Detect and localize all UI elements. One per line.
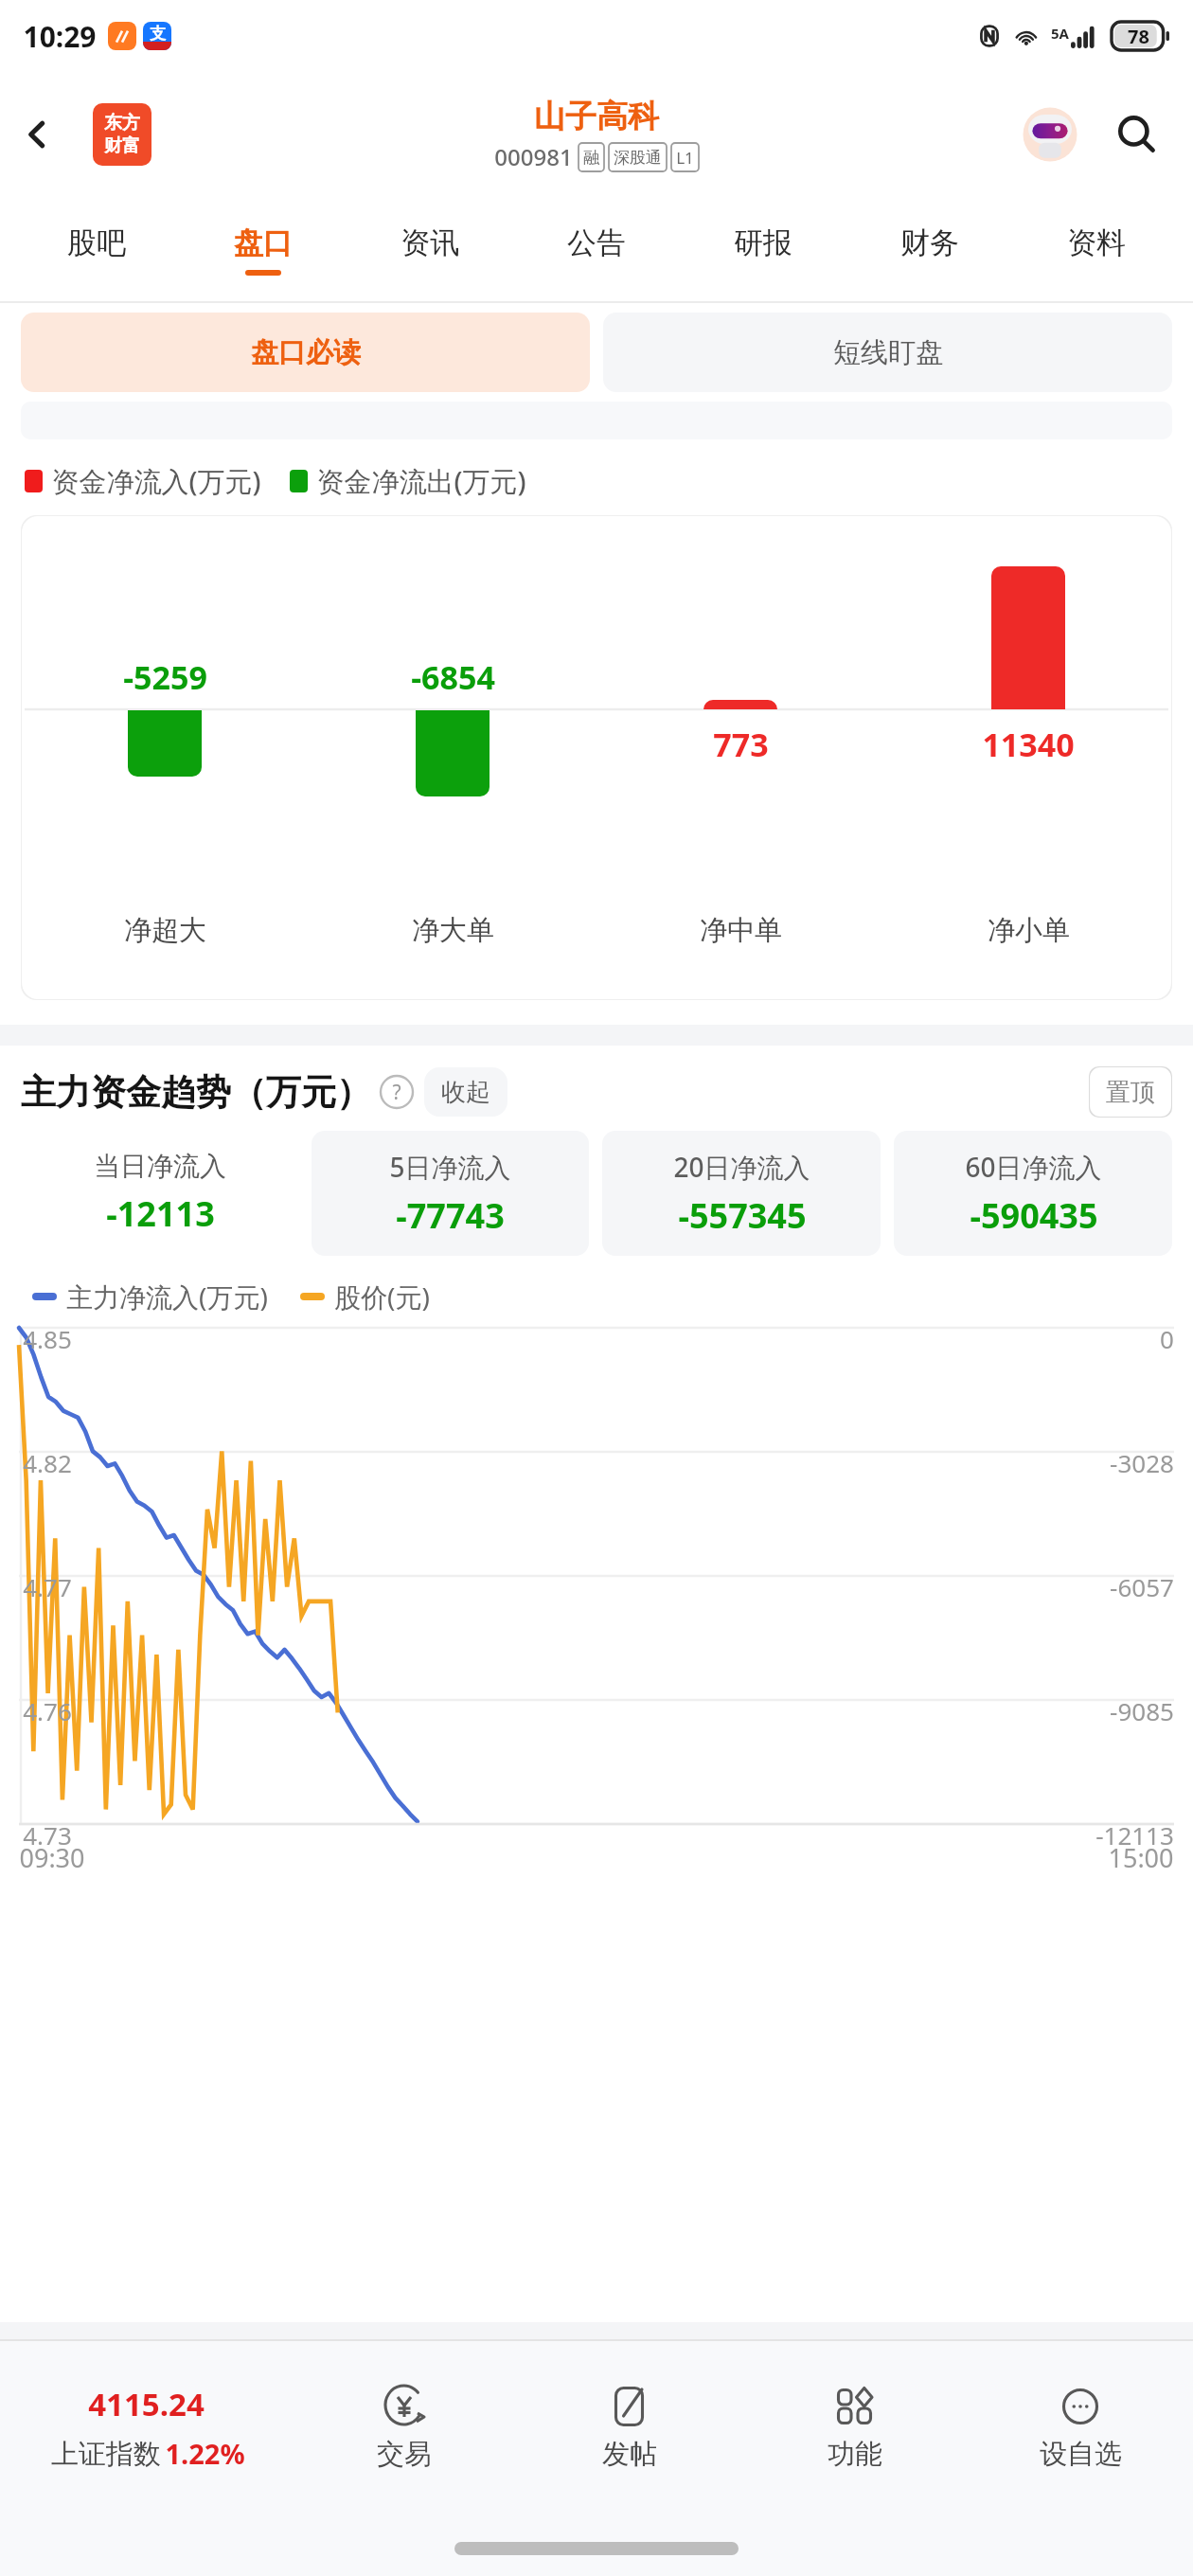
staticText: 财务 [900,224,959,261]
button[interactable]: 研报 [680,197,846,303]
staticText: 公告 [567,224,626,261]
button[interactable]: 交易 [292,2339,517,2515]
button[interactable]: 资料 [1013,197,1180,303]
button[interactable]: 返回 [6,103,68,166]
staticText: 净中单 [700,913,782,948]
staticText: 78 [1128,24,1149,49]
staticText: 1.22% [165,2435,245,2472]
button[interactable]: 资讯 [347,197,513,303]
button[interactable]: 4115.24 [0,2383,292,2472]
staticText: 000981 [494,141,573,172]
staticText: 净超大 [124,913,206,948]
staticText: 5A [1051,24,1069,43]
staticText: 交易 [377,2437,432,2472]
staticText: 60日净流入 [965,1149,1102,1185]
staticText: -6854 [411,655,495,699]
staticText: 4.73 [23,1818,72,1851]
staticText: 盘口 [234,224,293,261]
staticText: 收起 [441,1077,490,1108]
staticText: 主力净流入(万元) [66,1279,268,1315]
button[interactable]: 5日净流入 [312,1131,589,1256]
button[interactable]: 盘口 [180,197,347,303]
staticText: 09:30 [19,1840,85,1875]
staticText: -12113 [106,1190,215,1237]
staticText: 功能 [828,2437,882,2472]
button[interactable]: 置顶 [1089,1066,1172,1118]
staticText: 11340 [982,723,1075,766]
staticText: -590435 [970,1192,1098,1239]
staticText: -5259 [123,655,207,699]
staticText: 支 [150,24,166,44]
button[interactable]: 收起 [424,1067,507,1117]
staticText: 4.76 [23,1694,72,1727]
button[interactable]: 东方财富 [93,103,151,166]
staticText: 15:00 [1108,1840,1174,1875]
staticText: 净小单 [988,913,1070,948]
staticText: 20日净流入 [673,1149,810,1185]
staticText: 股吧 [67,224,126,261]
staticText: 773 [713,723,769,766]
button[interactable]: 股吧 [13,197,180,303]
staticText: -6057 [1110,1570,1174,1603]
staticText: 4.85 [23,1322,72,1355]
staticText: 资金净流出(万元) [316,462,526,500]
button[interactable]: 20日净流入 [602,1131,881,1256]
staticText: 10:29 [23,17,97,56]
staticText: 0 [1160,1322,1174,1355]
staticText: 融 [583,148,599,168]
button[interactable]: 短线盯盘 [603,313,1172,392]
button[interactable]: 公告 [513,197,680,303]
staticText: 东方 [104,112,140,134]
staticText: 短线盯盘 [833,335,943,370]
staticText: 盘口必读 [251,335,361,370]
staticText: 置顶 [1106,1077,1155,1108]
button[interactable]: 当日净流入 [21,1131,298,1256]
staticText: ? [392,1079,401,1106]
staticText: 资料 [1067,224,1126,261]
button[interactable]: 功能 [742,2339,968,2515]
staticText: 发帖 [602,2437,657,2472]
button[interactable]: 搜索 [1104,102,1168,167]
staticText: 资讯 [401,224,459,261]
staticText: -9085 [1110,1694,1174,1727]
staticText: 主力资金趋势（万元） [21,1070,371,1115]
button[interactable]: AI助手 [1021,105,1079,164]
button[interactable]: -5259 [21,515,1172,1000]
staticText: L1 [676,147,694,169]
staticText: -557345 [678,1192,807,1239]
staticText: 深股通 [614,148,662,168]
staticText: 资金净流入(万元) [51,462,261,500]
button[interactable]: 60日净流入 [894,1131,1172,1256]
staticText: -77743 [396,1192,505,1239]
staticText: 山子高科 [534,97,659,136]
staticText: 研报 [734,224,792,261]
staticText: 4115.24 [88,2383,205,2425]
button[interactable]: 发帖 [517,2339,742,2515]
staticText: 4.82 [23,1446,72,1479]
staticText: 设自选 [1040,2437,1122,2472]
staticText: 当日净流入 [94,1150,226,1183]
staticText: 上证指数 [47,2434,165,2472]
staticText: 净大单 [412,913,494,948]
button[interactable]: 设自选 [968,2339,1193,2515]
staticText: 5日净流入 [389,1149,511,1185]
staticText: 股价(元) [334,1279,430,1315]
staticText: 4.77 [23,1570,72,1603]
button[interactable]: 盘口必读 [21,313,590,392]
staticText: -12113 [1095,1818,1174,1851]
staticText: -3028 [1110,1446,1174,1479]
button[interactable]: 财务 [846,197,1013,303]
staticText: 财富 [104,134,140,157]
button[interactable]: 说明 [379,1074,415,1110]
